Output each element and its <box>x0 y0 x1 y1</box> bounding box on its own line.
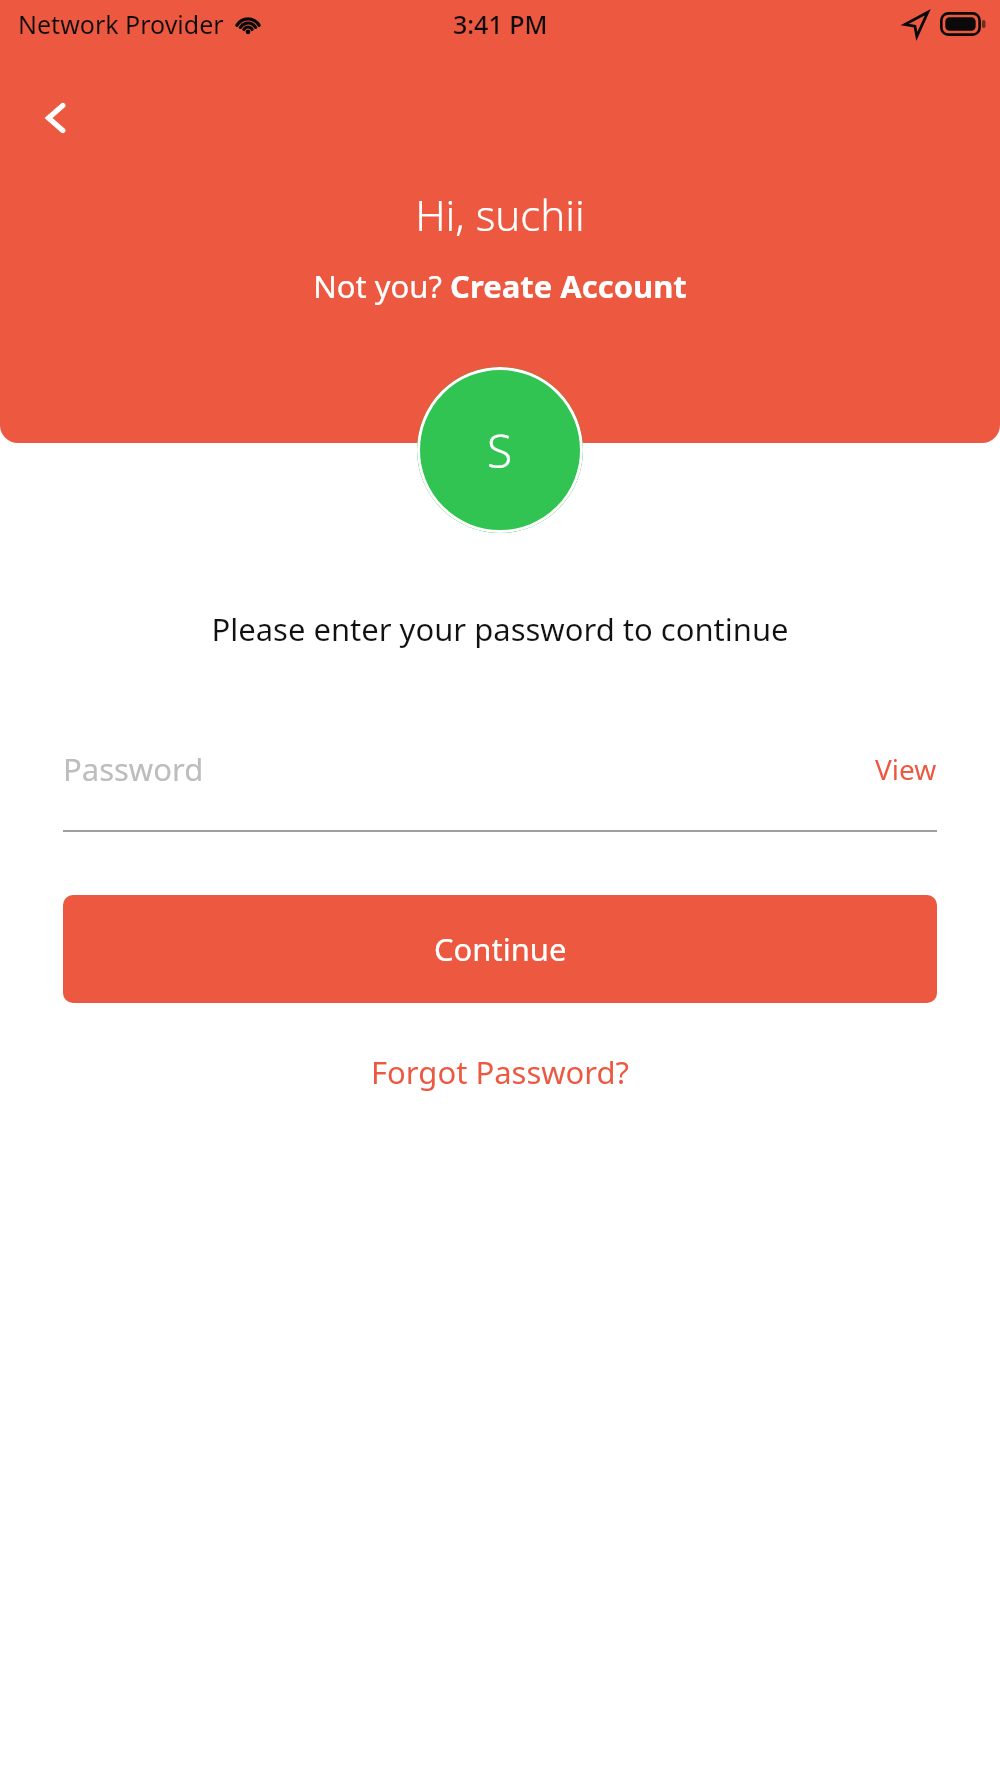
staticText: Not you? Create Account <box>313 265 687 307</box>
staticText: Network Provider <box>18 7 224 41</box>
button[interactable]: Account avatar <box>417 367 583 533</box>
staticText: Continue <box>434 928 567 970</box>
staticText: View <box>875 750 937 788</box>
button[interactable]: Password <box>63 748 937 790</box>
staticText: Forgot Password? <box>371 1051 630 1093</box>
staticText: Password <box>63 748 875 790</box>
button[interactable]: View <box>875 750 937 788</box>
staticText: S <box>487 419 513 482</box>
button[interactable]: Back <box>20 82 92 154</box>
button[interactable]: Not you? Create Account <box>313 265 687 307</box>
button[interactable]: Forgot Password? <box>347 1041 654 1103</box>
button[interactable]: Continue <box>63 895 937 1003</box>
staticText: Hi, suchii <box>415 186 585 243</box>
staticText: 3:41 PM <box>453 7 548 41</box>
staticText: Please enter your password to continue <box>211 608 789 650</box>
